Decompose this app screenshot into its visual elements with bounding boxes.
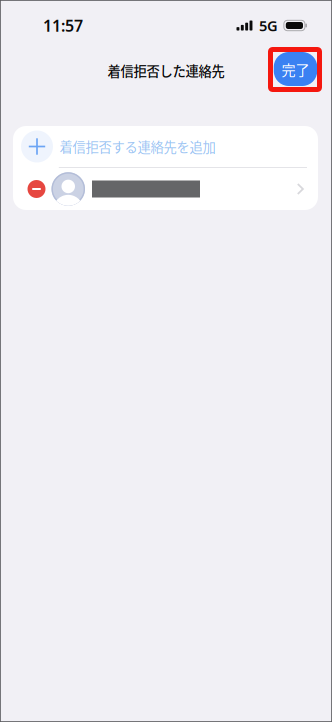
staticText: 着信拒否する連絡先を追加 xyxy=(59,137,215,156)
staticText: 11:57 xyxy=(43,15,83,36)
staticText: 完了 xyxy=(281,59,309,79)
staticText: 5G xyxy=(259,16,278,35)
button[interactable]: 着信拒否する連絡先を追加 xyxy=(13,126,318,167)
button[interactable] xyxy=(13,168,318,210)
staticText: 着信拒否した連絡先 xyxy=(107,61,224,80)
button[interactable]: 完了 xyxy=(274,52,317,86)
